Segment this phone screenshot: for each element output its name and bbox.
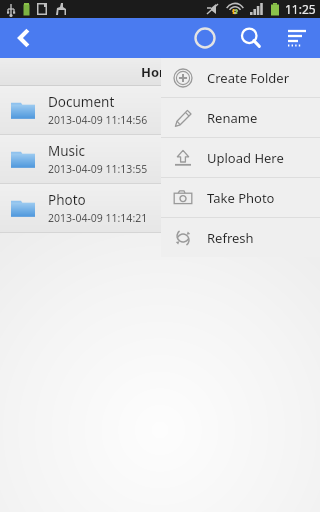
button[interactable]: Back xyxy=(0,18,48,58)
staticText: Document xyxy=(48,93,115,111)
staticText: Create Folder xyxy=(207,69,290,87)
staticText: Refresh xyxy=(207,229,254,247)
button[interactable]: Rename xyxy=(161,98,320,137)
button[interactable]: Photo xyxy=(0,184,320,232)
staticText: Upload Here xyxy=(207,149,284,167)
button[interactable]: Create Folder xyxy=(161,58,320,97)
button[interactable]: Search xyxy=(228,18,274,58)
staticText: Photo xyxy=(48,191,86,209)
button[interactable]: More options xyxy=(274,18,320,58)
button[interactable]: Document xyxy=(0,86,320,134)
button[interactable]: Upload Here xyxy=(161,138,320,177)
staticText: Home xyxy=(141,63,180,81)
button[interactable]: Take Photo xyxy=(161,178,320,217)
button[interactable]: Refresh status xyxy=(182,18,228,58)
staticText: Music xyxy=(48,142,86,160)
button[interactable]: Music xyxy=(0,135,320,183)
staticText: Take Photo xyxy=(207,189,275,207)
staticText: 2013-04-09 11:13:55 xyxy=(48,162,148,176)
staticText: 11:25 xyxy=(285,1,316,17)
button[interactable]: Refresh xyxy=(161,218,320,257)
staticText: Rename xyxy=(207,109,258,127)
staticText: 2013-04-09 11:14:56 xyxy=(48,113,148,127)
staticText: 2013-04-09 11:14:21 xyxy=(48,211,148,225)
